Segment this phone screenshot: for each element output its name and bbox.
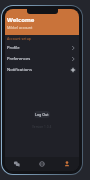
staticText: Preferences <box>7 56 31 62</box>
button[interactable]: Log Out <box>34 111 50 118</box>
staticText: Log Out <box>35 112 49 117</box>
button[interactable]: Explore <box>29 157 54 171</box>
button[interactable]: Preferences <box>5 53 79 64</box>
staticText: Mikkel account <box>7 25 33 30</box>
staticText: Version 1.0.4 <box>32 125 52 129</box>
staticText: Account setup <box>7 36 32 41</box>
button[interactable]: Notifications <box>5 64 79 75</box>
staticText: Profile <box>7 45 20 51</box>
button[interactable]: Profile <box>54 157 79 171</box>
button[interactable]: Profile <box>5 42 79 53</box>
button[interactable]: Messages <box>5 157 29 171</box>
staticText: Notifications <box>7 67 32 73</box>
staticText: Welcome <box>7 16 35 24</box>
